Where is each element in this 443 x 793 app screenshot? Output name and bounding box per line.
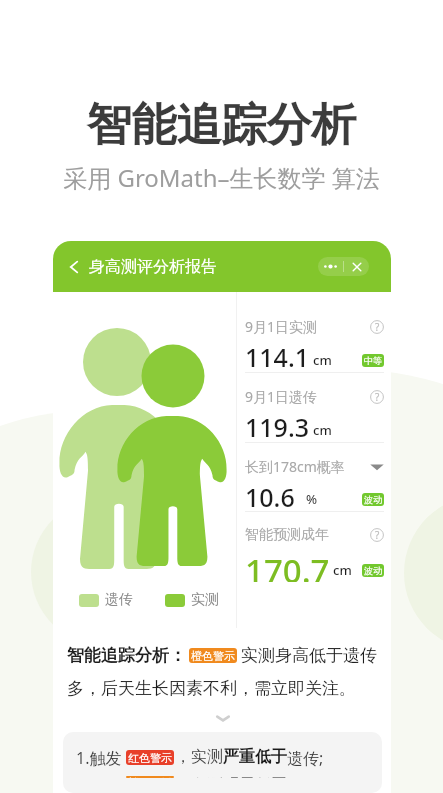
- staticText: 长到178cm概率: [245, 457, 345, 476]
- staticText: 10.6: [245, 480, 295, 511]
- staticText: 红色警示: [128, 751, 172, 765]
- button[interactable]: Expand list: [370, 460, 384, 474]
- staticText: 多，后天生长因素不利，需立即关注。: [67, 678, 356, 699]
- staticText: cm: [333, 561, 352, 579]
- button[interactable]: Close: [344, 257, 369, 276]
- staticText: 遗传;: [287, 747, 324, 767]
- staticText: 橙色警示: [128, 776, 172, 778]
- button[interactable]: More: [318, 257, 343, 276]
- staticText: 实测: [191, 591, 219, 609]
- button[interactable]: Help: [370, 528, 384, 542]
- button[interactable]: Back: [65, 258, 83, 276]
- staticText: cm: [313, 351, 332, 369]
- button[interactable]: Help: [370, 320, 384, 334]
- button[interactable]: Expand: [211, 706, 235, 730]
- staticText: 170.7: [245, 548, 330, 582]
- staticText: ，实测: [175, 747, 223, 767]
- staticText: 119.3: [245, 410, 310, 442]
- staticText: 9月1日实测: [245, 317, 318, 336]
- staticText: ?: [375, 528, 380, 542]
- staticText: 1.触发: [76, 747, 122, 767]
- staticText: 波动: [364, 565, 382, 576]
- staticText: 智能预测成年: [245, 526, 329, 544]
- staticText: 中等: [364, 355, 382, 366]
- staticText: 橙色警示: [191, 649, 235, 663]
- staticText: 严重低于: [223, 747, 287, 767]
- staticText: 采用 GroMath–生长数学 算法: [0, 161, 443, 194]
- staticText: 身高测评分析报告: [89, 257, 217, 277]
- staticText: 智能追踪分析：: [67, 645, 186, 666]
- staticText: 9月1日遗传: [245, 387, 318, 406]
- staticText: 智能追踪分析: [0, 97, 443, 154]
- staticText: ?: [375, 390, 380, 404]
- staticText: 遗传: [105, 591, 133, 609]
- button[interactable]: Help: [370, 390, 384, 404]
- staticText: 实测身高低于遗传身高较: [241, 645, 382, 666]
- staticText: cm: [313, 421, 332, 439]
- staticText: 114.1: [245, 340, 310, 372]
- staticText: ?: [375, 320, 380, 334]
- staticText: 明显低于: [223, 776, 287, 778]
- staticText: 波动: [364, 494, 382, 505]
- staticText: %: [306, 490, 318, 508]
- staticText: ，实测: [175, 776, 223, 778]
